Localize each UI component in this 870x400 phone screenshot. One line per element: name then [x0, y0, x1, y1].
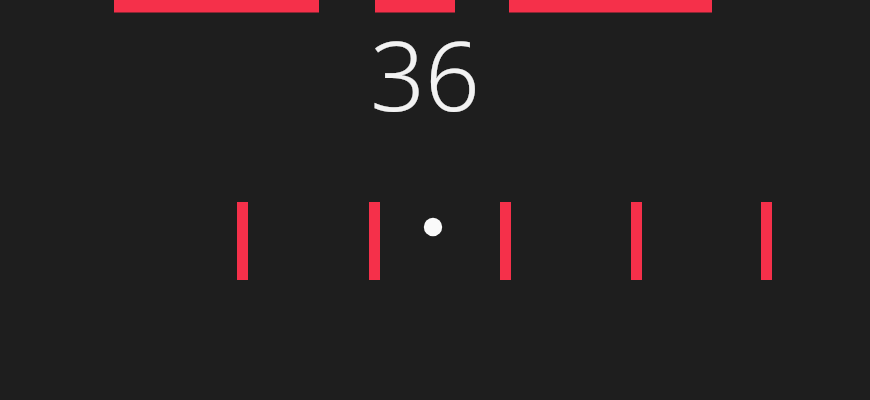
staticText: 36 [370, 8, 480, 139]
button[interactable]: Arcade game board, score 36 [0, 0, 870, 400]
